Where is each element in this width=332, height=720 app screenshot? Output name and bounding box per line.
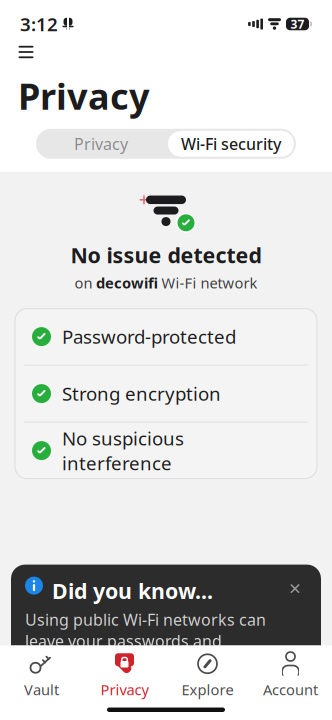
staticText: 37 xyxy=(290,16,304,32)
staticText: Using public Wi-Fi networks can leave yo… xyxy=(25,609,289,715)
staticText: on xyxy=(74,273,92,293)
staticText: Wi-Fi network xyxy=(161,273,257,293)
staticText: Privacy xyxy=(18,72,150,120)
button[interactable]: Account xyxy=(249,649,332,701)
button[interactable]: Wi-Fi security xyxy=(168,131,294,157)
button[interactable]: Explore xyxy=(166,649,249,701)
staticText: 3:12 xyxy=(20,12,58,36)
staticText: Did you know... xyxy=(52,577,213,605)
button[interactable]: Privacy xyxy=(83,649,166,701)
staticText: No issue detected xyxy=(70,241,261,269)
staticText: Wi-Fi security xyxy=(181,133,281,154)
staticText: Account xyxy=(263,680,318,699)
staticText: No suspicious interference xyxy=(62,426,184,475)
staticText: Privacy xyxy=(74,133,128,154)
staticText: Privacy xyxy=(100,680,148,699)
staticText: decowifi xyxy=(96,273,158,293)
button[interactable]: Vault xyxy=(0,649,83,701)
staticText: Explore xyxy=(181,680,233,699)
button[interactable]: Privacy xyxy=(36,129,166,159)
staticText: Strong encryption xyxy=(62,381,221,406)
button[interactable]: Menu xyxy=(9,38,43,66)
staticText: Vault xyxy=(24,680,59,699)
staticText: Password-protected xyxy=(62,324,236,349)
button[interactable]: Close xyxy=(283,577,307,601)
